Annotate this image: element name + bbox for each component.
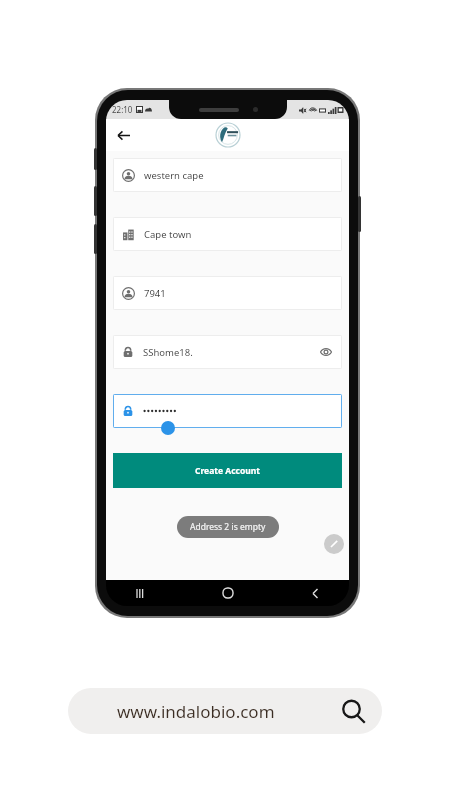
staticText: 22:10 — [112, 104, 133, 115]
button[interactable]: www.indalobio.com — [68, 688, 382, 734]
button[interactable]: Back — [112, 124, 134, 146]
button[interactable]: Edit — [324, 534, 344, 554]
button[interactable]: western cape — [113, 158, 342, 192]
button[interactable]: Create Account — [113, 453, 342, 488]
staticText: Address 2 is empty — [190, 521, 266, 533]
button[interactable] — [113, 394, 342, 428]
button[interactable]: SShome18. — [113, 335, 342, 369]
staticText: www.indalobio.com — [117, 700, 275, 723]
staticText: 7941 — [144, 287, 166, 300]
button[interactable]: Recents — [130, 583, 150, 603]
staticText: SShome18. — [143, 346, 193, 359]
button[interactable]: Cape town — [113, 217, 342, 251]
staticText: Cape town — [144, 228, 192, 241]
button[interactable]: Home — [218, 583, 238, 603]
button[interactable]: Back — [305, 583, 325, 603]
button[interactable]: Show password — [319, 345, 333, 359]
button[interactable]: 7941 — [113, 276, 342, 310]
button[interactable]: Search — [324, 688, 382, 734]
staticText: western cape — [144, 169, 204, 182]
staticText: Create Account — [195, 465, 260, 477]
